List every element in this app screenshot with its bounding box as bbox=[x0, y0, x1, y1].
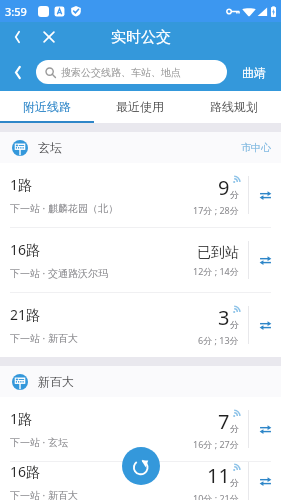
staticText: 3:59 bbox=[5, 4, 27, 19]
staticText: 12分 ; 14分 bbox=[193, 265, 239, 277]
button[interactable]: 16路 bbox=[0, 228, 281, 292]
staticText: 市中心 bbox=[241, 141, 271, 154]
button[interactable]: Switch direction bbox=[249, 397, 281, 461]
staticText: 6分 ; 13分 bbox=[198, 334, 239, 346]
button[interactable]: Switch direction bbox=[249, 462, 281, 500]
staticText: 下一站 · 玄坛 bbox=[10, 435, 68, 449]
button[interactable]: 曲靖 bbox=[227, 55, 281, 89]
button[interactable]: Switch direction bbox=[249, 228, 281, 292]
staticText: 下一站 · 麒麟花园（北） bbox=[10, 201, 118, 215]
button[interactable]: 1路 bbox=[0, 397, 281, 461]
staticText: 玄坛 bbox=[38, 140, 62, 155]
staticText: 附近线路 bbox=[23, 99, 71, 114]
button[interactable]: 搜索公交线路、车站、地点 bbox=[36, 60, 227, 84]
button[interactable]: 路线规划 bbox=[187, 91, 281, 121]
button[interactable]: 最近使用 bbox=[93, 91, 187, 121]
staticText: 下一站 · 新百大 bbox=[10, 488, 78, 500]
staticText: 分 bbox=[230, 423, 239, 434]
staticText: 16路 bbox=[10, 240, 41, 259]
staticText: 路线规划 bbox=[210, 99, 258, 114]
button[interactable]: Back bbox=[2, 22, 32, 52]
staticText: 1路 bbox=[10, 409, 33, 428]
button[interactable]: Switch direction bbox=[249, 163, 281, 227]
staticText: 已到站 bbox=[197, 244, 239, 262]
button[interactable]: Back bbox=[0, 55, 36, 89]
button[interactable]: Close bbox=[34, 22, 64, 52]
button[interactable]: 玄坛 bbox=[0, 132, 281, 163]
staticText: 21路 bbox=[10, 305, 41, 324]
button[interactable]: 1路 bbox=[0, 163, 281, 227]
button[interactable]: Switch direction bbox=[249, 293, 281, 357]
staticText: 实时公交 bbox=[111, 28, 171, 47]
staticText: 新百大 bbox=[38, 374, 74, 389]
staticText: 分 bbox=[230, 189, 239, 200]
staticText: 下一站 · 新百大 bbox=[10, 331, 78, 345]
staticText: 11 bbox=[207, 462, 230, 489]
button[interactable]: 16路 bbox=[0, 462, 281, 500]
staticText: 下一站 · 交通路沃尔玛 bbox=[10, 266, 108, 280]
button[interactable]: 附近线路 bbox=[0, 91, 93, 121]
button[interactable]: 新百大 bbox=[0, 366, 281, 397]
staticText: 9 bbox=[218, 174, 230, 201]
staticText: 10分 ; 21分 bbox=[193, 492, 239, 500]
staticText: 16路 bbox=[10, 462, 41, 481]
staticText: 分 bbox=[230, 319, 239, 330]
button[interactable]: Refresh bbox=[122, 447, 160, 485]
staticText: 3 bbox=[218, 304, 230, 331]
staticText: 分 bbox=[230, 477, 239, 488]
staticText: 最近使用 bbox=[116, 99, 164, 114]
staticText: 17分 ; 28分 bbox=[193, 204, 239, 216]
staticText: 7 bbox=[218, 408, 230, 435]
staticText: 曲靖 bbox=[242, 65, 266, 80]
staticText: 16分 ; 27分 bbox=[193, 438, 239, 450]
staticText: 1路 bbox=[10, 175, 33, 194]
button[interactable]: 21路 bbox=[0, 293, 281, 357]
staticText: 搜索公交线路、车站、地点 bbox=[61, 66, 181, 79]
